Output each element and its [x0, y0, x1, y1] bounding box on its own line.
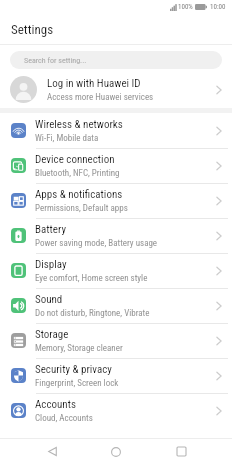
button[interactable]: Apps & notifications	[0, 183, 232, 218]
staticText: Sound	[35, 293, 63, 306]
staticText: Wireless & networks	[35, 118, 123, 131]
button[interactable]: Sound	[0, 288, 232, 323]
staticText: 10:00	[210, 3, 226, 11]
staticText: Display	[35, 258, 67, 271]
button[interactable]: Home	[103, 439, 129, 464]
staticText: Search for setting...	[24, 56, 87, 65]
button[interactable]: Display	[0, 253, 232, 288]
staticText: Eye comfort, Home screen style	[35, 273, 148, 284]
staticText: Power saving mode, Battery usage	[35, 238, 158, 249]
staticText: Wi-Fi, Mobile data	[35, 133, 99, 144]
staticText: Access more Huawei services	[47, 92, 154, 103]
button[interactable]: Back	[39, 439, 65, 464]
button[interactable]: Recents	[168, 439, 194, 464]
staticText: Cloud, Accounts	[35, 413, 93, 424]
staticText: Apps & notifications	[35, 188, 123, 201]
button[interactable]: Battery	[0, 218, 232, 253]
staticText: Do not disturb, Ringtone, Vibrate	[35, 308, 150, 319]
staticText: Memory, Storage cleaner	[35, 343, 123, 354]
staticText: Bluetooth, NFC, Printing	[35, 168, 120, 179]
button[interactable]: Storage	[0, 323, 232, 358]
button[interactable]: Search for setting...	[10, 51, 222, 69]
staticText: Accounts	[35, 398, 76, 411]
button[interactable]: Wireless & networks	[0, 113, 232, 148]
button[interactable]: Security & privacy	[0, 358, 232, 393]
staticText: Log in with Huawei ID	[47, 77, 141, 90]
button[interactable]: Device connection	[0, 148, 232, 183]
staticText: Battery	[35, 223, 66, 236]
staticText: Permissions, Default apps	[35, 203, 128, 214]
staticText: Fingerprint, Screen lock	[35, 378, 119, 389]
staticText: Device connection	[35, 153, 115, 166]
staticText: 100%	[178, 3, 193, 11]
staticText: Security & privacy	[35, 363, 112, 376]
button[interactable]: Log in with Huawei ID	[0, 71, 232, 108]
staticText: Storage	[35, 328, 69, 341]
staticText: Settings	[11, 22, 54, 37]
button[interactable]: Accounts	[0, 393, 232, 428]
